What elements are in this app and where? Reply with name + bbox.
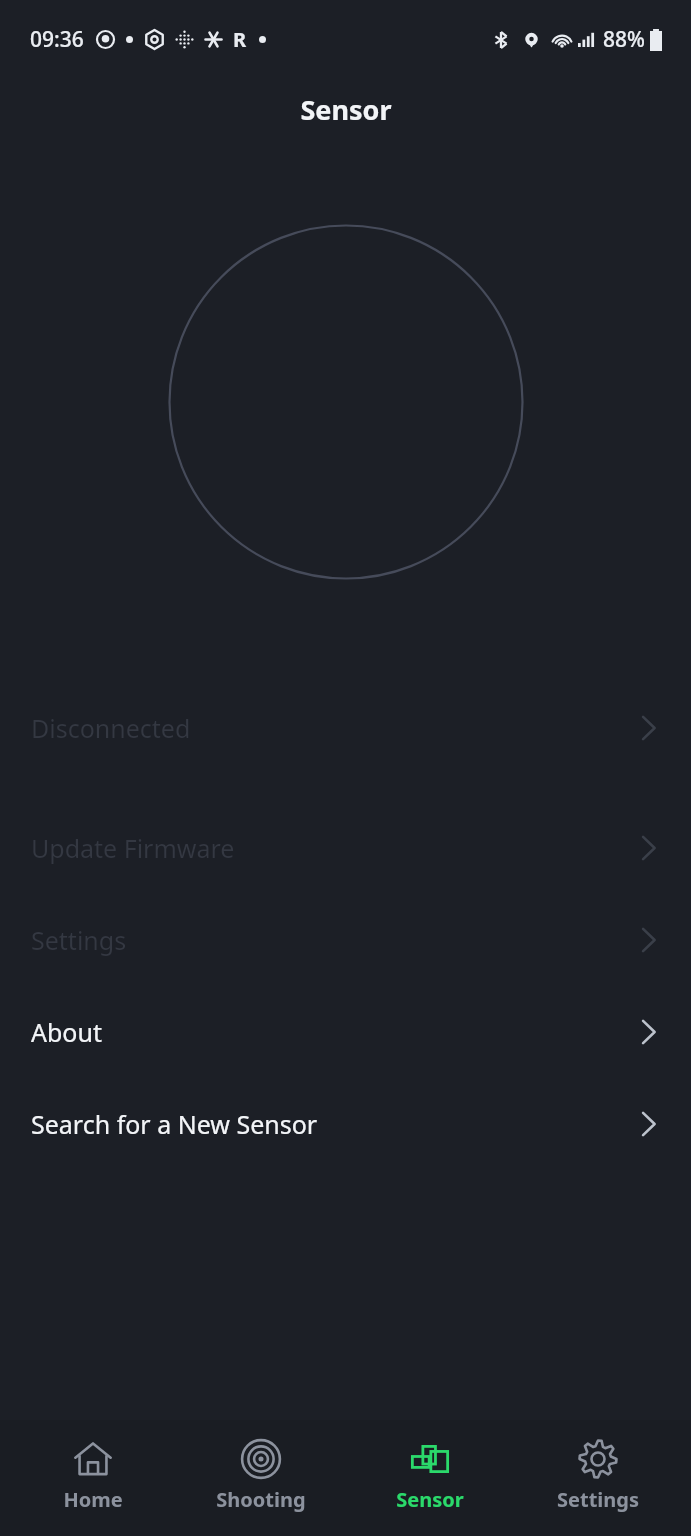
- staticText: Home: [63, 1486, 123, 1513]
- staticText: Search for a New Sensor: [31, 1107, 318, 1141]
- button[interactable]: Update Firmware: [0, 802, 691, 894]
- staticText: About: [31, 1015, 102, 1049]
- staticText: Disconnected: [31, 711, 191, 745]
- staticText: Sensor: [396, 1486, 464, 1513]
- staticText: R: [233, 26, 247, 53]
- staticText: Settings: [31, 923, 127, 957]
- staticText: 88%: [603, 25, 645, 54]
- button[interactable]: Search for a New Sensor: [0, 1078, 691, 1170]
- staticText: Shooting: [216, 1486, 306, 1513]
- button[interactable]: Home: [18, 1420, 168, 1513]
- staticText: Sensor: [300, 91, 392, 128]
- button[interactable]: Sensor: [355, 1420, 505, 1513]
- staticText: Settings: [557, 1486, 639, 1513]
- staticText: 09:36: [30, 25, 84, 54]
- button[interactable]: Shooting: [186, 1420, 336, 1513]
- staticText: Update Firmware: [31, 831, 235, 865]
- button[interactable]: About: [0, 986, 691, 1078]
- button[interactable]: Settings: [523, 1420, 673, 1513]
